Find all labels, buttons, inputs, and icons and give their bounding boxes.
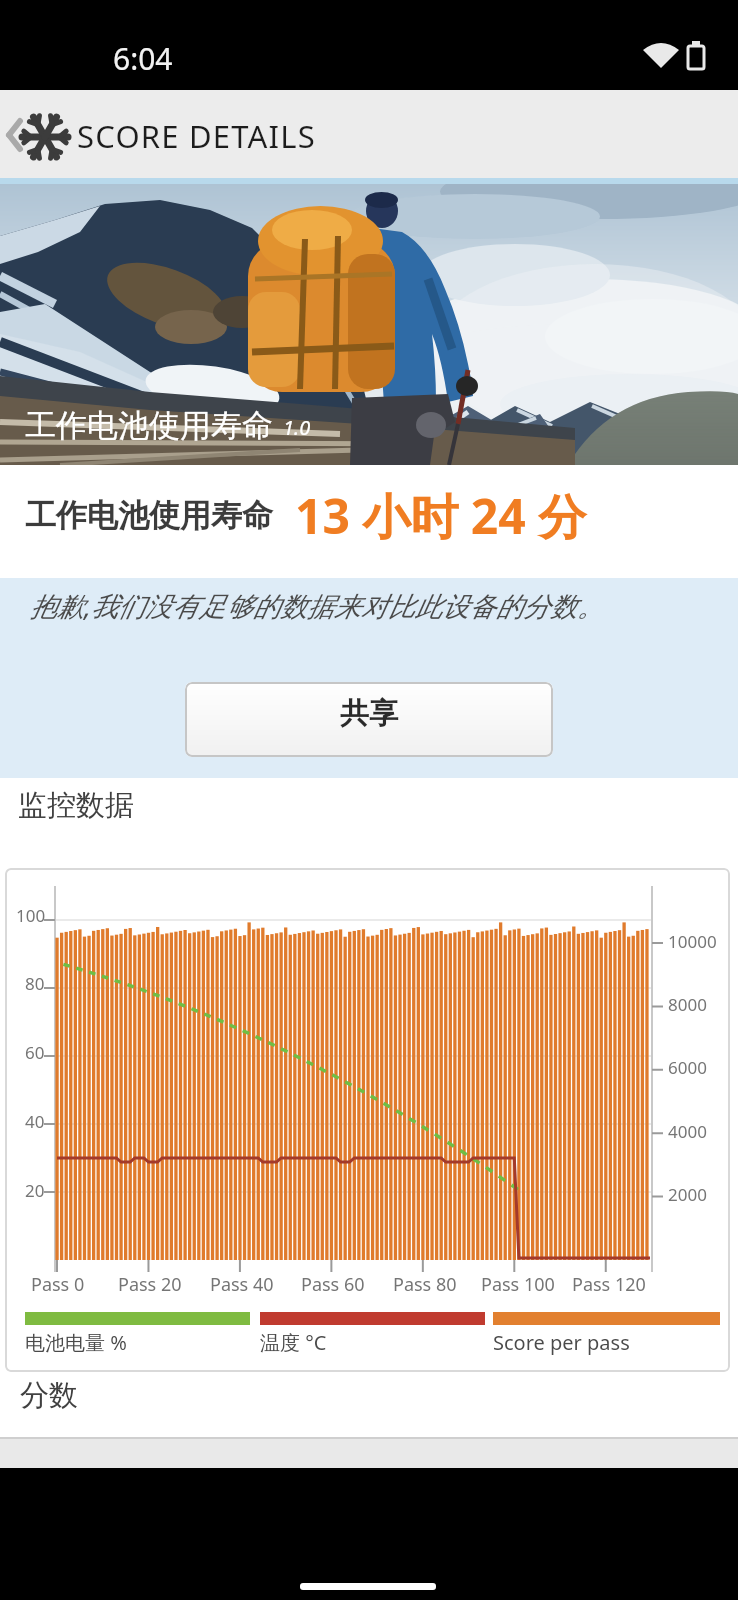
staticText: 6000 bbox=[668, 1056, 707, 1079]
staticText: 40 bbox=[25, 1110, 45, 1133]
staticText: 6:04 bbox=[113, 38, 173, 79]
button[interactable]: 共享 bbox=[185, 682, 553, 757]
staticText: 100 bbox=[16, 904, 46, 927]
staticText: Pass 20 bbox=[118, 1272, 182, 1297]
staticText: 1.0 bbox=[283, 414, 311, 441]
staticText: Pass 60 bbox=[301, 1272, 365, 1297]
staticText: Pass 80 bbox=[393, 1272, 457, 1297]
staticText: 监控数据 bbox=[18, 787, 134, 824]
staticText: 抱歉,我们没有足够的数据来对比此设备的分数。 bbox=[30, 587, 604, 624]
staticText: 共享 bbox=[340, 695, 398, 732]
staticText: 分数 bbox=[20, 1377, 78, 1414]
staticText: Pass 40 bbox=[210, 1272, 274, 1297]
staticText: 10000 bbox=[668, 930, 717, 953]
staticText: 2000 bbox=[668, 1183, 707, 1206]
staticText: Score per pass bbox=[493, 1329, 630, 1356]
staticText: 温度 °C bbox=[260, 1329, 327, 1356]
staticText: 4000 bbox=[668, 1120, 707, 1143]
staticText: Pass 120 bbox=[572, 1272, 646, 1297]
staticText: 电池电量 % bbox=[25, 1329, 127, 1356]
staticText: 13 小时 24 分 bbox=[295, 483, 587, 549]
button[interactable] bbox=[300, 1583, 436, 1590]
button[interactable] bbox=[0, 90, 70, 178]
staticText: 60 bbox=[25, 1041, 45, 1064]
staticText: Pass 0 bbox=[31, 1272, 85, 1297]
staticText: SCORE DETAILS bbox=[77, 115, 316, 157]
staticText: 8000 bbox=[668, 993, 707, 1016]
staticText: 20 bbox=[25, 1179, 45, 1202]
staticText: 80 bbox=[25, 972, 45, 995]
staticText: Pass 100 bbox=[481, 1272, 555, 1297]
staticText: 工作电池使用寿命 bbox=[25, 496, 273, 535]
staticText: 工作电池使用寿命 bbox=[25, 406, 273, 445]
